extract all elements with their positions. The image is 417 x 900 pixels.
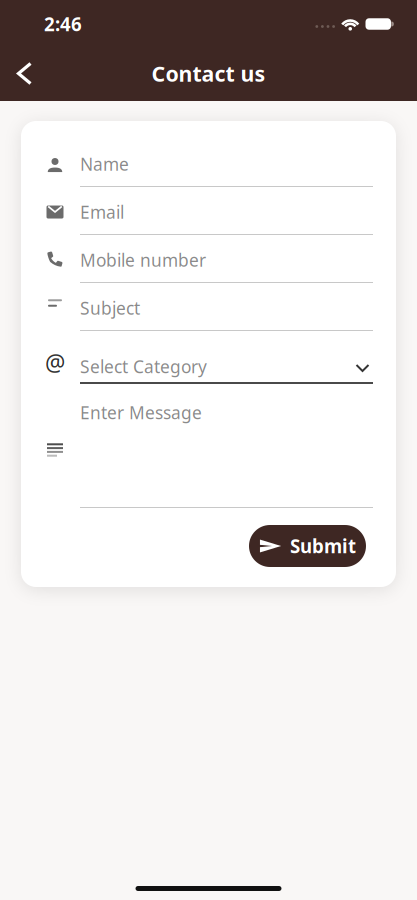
button[interactable]: Enter Message [80, 384, 373, 508]
button[interactable]: Email [80, 187, 373, 235]
staticText: Name [80, 152, 129, 175]
staticText: Contact us [151, 59, 265, 88]
staticText: Submit [290, 534, 356, 558]
staticText: Email [80, 200, 124, 223]
staticText: Mobile number [80, 248, 206, 271]
button[interactable]: Submit [249, 525, 366, 567]
button[interactable]: Select Category [80, 331, 373, 384]
button[interactable] [0, 45, 50, 102]
button[interactable]: Mobile number [80, 235, 373, 283]
staticText: @ [45, 347, 65, 377]
staticText: 2:46 [44, 12, 82, 36]
button[interactable]: Subject [80, 283, 373, 331]
staticText: Subject [80, 296, 140, 319]
staticText: Select Category [80, 355, 207, 378]
staticText: Enter Message [80, 401, 202, 424]
button[interactable]: Name [80, 139, 373, 187]
